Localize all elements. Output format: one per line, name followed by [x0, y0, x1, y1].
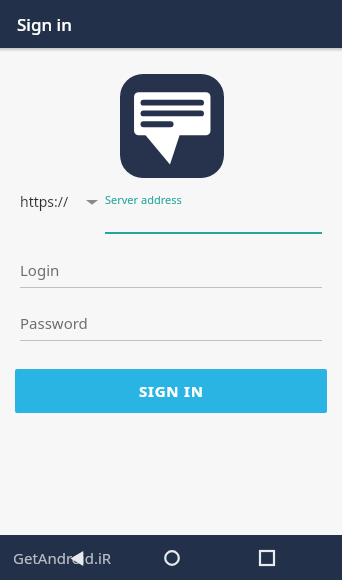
- button[interactable]: Password: [20, 313, 322, 341]
- staticText: SIGN IN: [139, 381, 204, 401]
- staticText: GetAndroid.iR: [13, 548, 112, 568]
- button[interactable]: Login: [20, 260, 322, 288]
- button[interactable]: SIGN IN: [15, 369, 327, 413]
- staticText: Login: [20, 260, 60, 280]
- button[interactable]: Back: [60, 542, 92, 574]
- button[interactable]: Recent apps: [251, 542, 283, 574]
- button[interactable]: Home: [155, 541, 189, 575]
- button[interactable]: https://: [20, 192, 98, 211]
- staticText: Server address: [105, 192, 182, 207]
- button[interactable]: Server address: [105, 192, 322, 234]
- staticText: https://: [20, 192, 69, 211]
- staticText: Sign in: [17, 13, 72, 36]
- other: App logo: [120, 74, 224, 178]
- staticText: Password: [20, 313, 88, 333]
